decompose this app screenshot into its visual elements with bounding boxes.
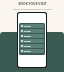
staticText: Service (24, 30, 31, 33)
staticText: Service (24, 50, 31, 53)
button[interactable]: Service (20, 29, 44, 33)
staticText: Service (24, 45, 31, 48)
staticText: Service (24, 25, 31, 28)
button[interactable]: Service (20, 49, 44, 53)
button[interactable]: Service (20, 39, 44, 43)
button[interactable]: Service (20, 44, 44, 48)
button[interactable]: Service (20, 34, 44, 38)
staticText: BOOK YOUR VISIT (18, 2, 47, 6)
button[interactable]: Service (20, 24, 44, 28)
staticText: Pick the service that suits you best (13, 7, 52, 10)
staticText: Service (24, 35, 31, 38)
staticText: Service (24, 40, 31, 43)
